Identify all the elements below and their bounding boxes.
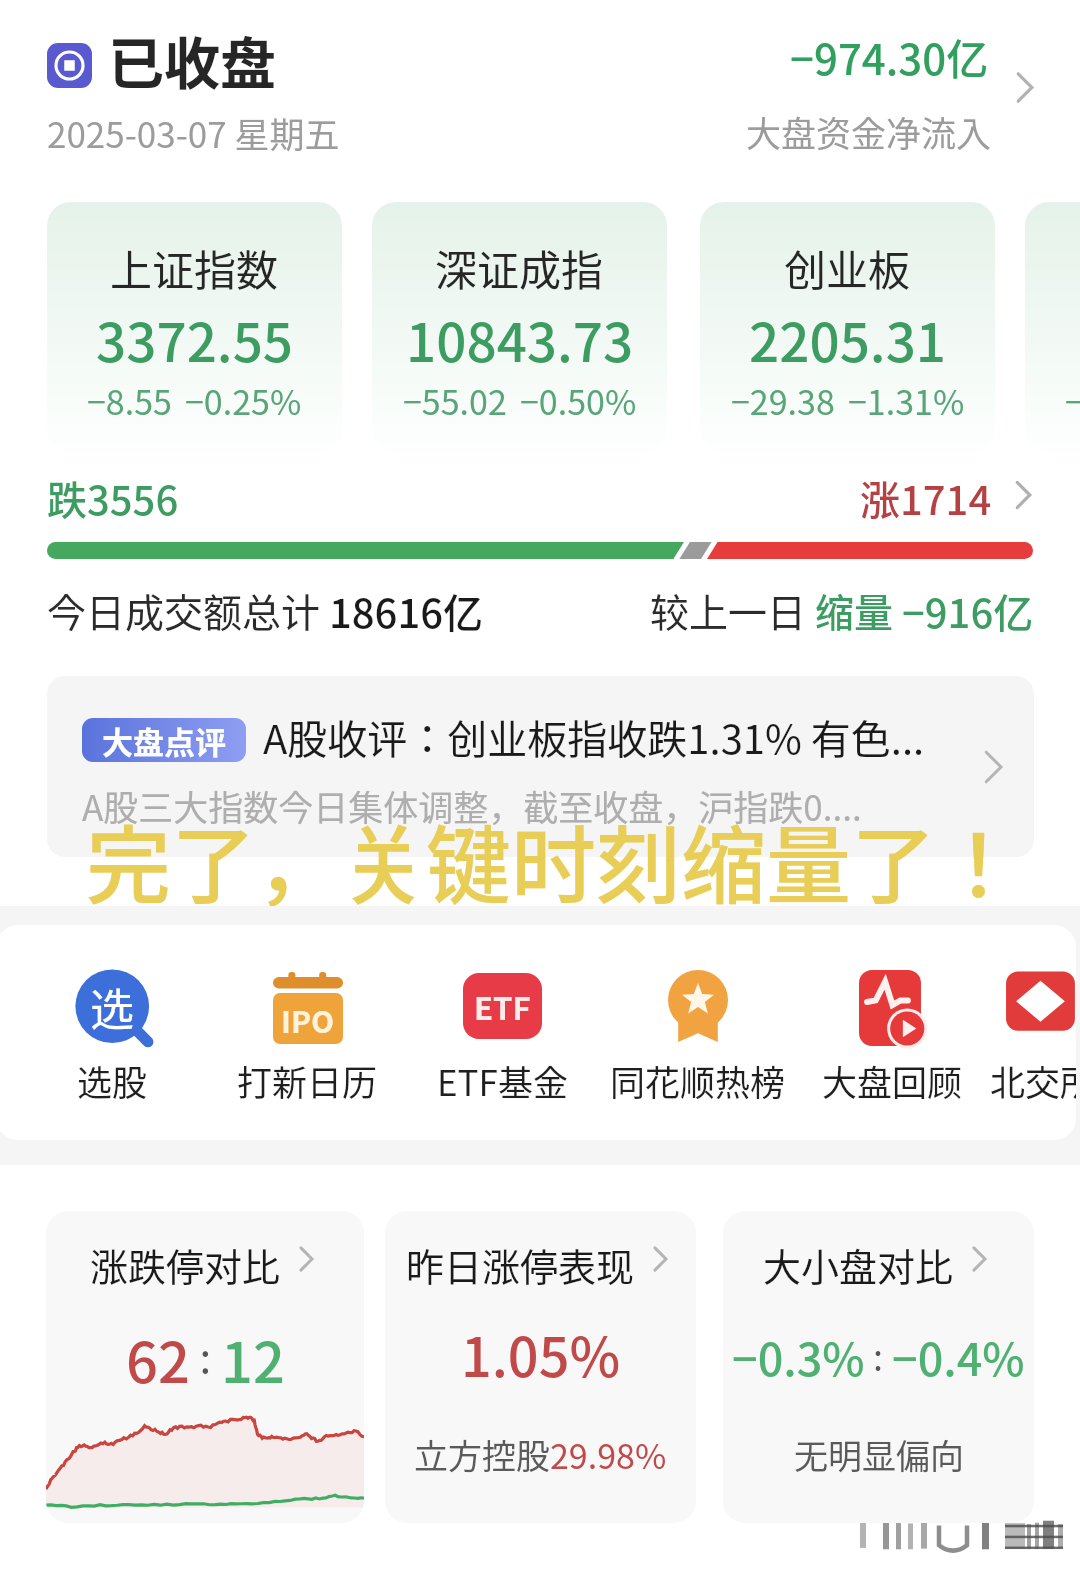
staticText: 大盘资金净流入 — [746, 106, 992, 157]
staticText: 跌3556 — [47, 469, 179, 527]
staticText: 大盘回顾 — [822, 1055, 963, 1106]
staticText: 大小盘对比 — [763, 1237, 954, 1292]
staticText: −8.55 — [87, 376, 172, 425]
button[interactable]: Capital flow detail — [1006, 69, 1043, 106]
staticText: 创业板 — [784, 237, 911, 298]
staticText: 缩量 — [815, 582, 902, 638]
button[interactable]: 大盘点评 — [47, 676, 1034, 857]
staticText: 涨跌停对比 — [90, 1237, 281, 1292]
staticText: 29.98% — [550, 1430, 667, 1479]
staticText: 较上一日 — [650, 582, 815, 638]
staticText: 北交所 — [990, 1055, 1076, 1106]
button[interactable]: 大小盘对比 — [723, 1211, 1034, 1523]
button[interactable]: 深证成指 — [372, 202, 667, 452]
staticText: 12 — [221, 1318, 285, 1399]
staticText: −974.30亿 — [790, 26, 989, 87]
staticText: : — [865, 1329, 892, 1381]
staticText: −0.4% — [892, 1324, 1025, 1389]
staticText: ETF基金 — [437, 1055, 568, 1106]
button[interactable]: ETF — [405, 925, 600, 1140]
staticText: 2025-03-07 星期五 — [47, 107, 340, 158]
button[interactable]: 同花顺热榜 — [600, 925, 795, 1140]
staticText: 打新日历 — [237, 1055, 378, 1106]
staticText: −916亿 — [902, 582, 1034, 640]
button[interactable]: Open market commentary — [973, 747, 1013, 787]
button[interactable]: Market status — [47, 43, 92, 88]
staticText: 今日成交额总计 — [47, 582, 329, 638]
staticText: 2205.31 — [749, 301, 947, 378]
staticText: 涨1714 — [860, 469, 992, 527]
button[interactable]: 创业板 — [700, 202, 995, 452]
staticText: 选 — [90, 975, 134, 1039]
staticText: −1.31% — [848, 376, 965, 425]
staticText: −0.3% — [732, 1324, 865, 1389]
button[interactable]: 选 — [15, 925, 210, 1140]
staticText: A股收评：创业板指收跌1.31% 有色... — [263, 708, 925, 766]
staticText: ETF — [474, 984, 531, 1029]
staticText: 18616亿 — [329, 582, 483, 640]
staticText: 无明显偏向 — [794, 1430, 964, 1479]
staticText: 深证成指 — [435, 237, 604, 298]
staticText: 已收盘 — [108, 19, 276, 100]
staticText: −8.17 — [1065, 376, 1080, 425]
button[interactable]: 北交所 — [990, 925, 1076, 1140]
staticText: −55.02 — [403, 376, 507, 425]
staticText: 大盘点评 — [102, 718, 226, 762]
staticText: 62 — [126, 1318, 190, 1399]
button[interactable]: 大盘回顾 — [795, 925, 990, 1140]
button[interactable]: IPO — [210, 925, 405, 1140]
staticText: 选股 — [77, 1055, 148, 1106]
staticText: 上证指数 — [110, 237, 279, 298]
staticText: −29.38 — [731, 376, 835, 425]
button[interactable]: 涨跌停对比 — [46, 1211, 364, 1523]
staticText: 立方控股 — [414, 1430, 550, 1479]
button[interactable]: 北证50 — [1025, 202, 1080, 452]
staticText: 3372.55 — [96, 301, 294, 378]
staticText: 昨日涨停表现 — [406, 1237, 635, 1292]
staticText: −0.25% — [185, 376, 302, 425]
button[interactable]: 昨日涨停表现 — [385, 1211, 696, 1523]
staticText: 同花顺热榜 — [610, 1055, 786, 1106]
button[interactable]: Advancers decliners detail — [1006, 478, 1040, 512]
staticText: 1.05% — [461, 1314, 621, 1392]
staticText: 完了，关键时刻缩量了！ — [86, 798, 1022, 921]
button[interactable]: 上证指数 — [47, 202, 342, 452]
staticText: 10843.73 — [406, 301, 634, 378]
staticText: A股三大指数今日集体调整，截至收盘，沪指跌0.... — [82, 780, 862, 831]
staticText: IPO — [281, 998, 335, 1041]
staticText: −0.50% — [520, 376, 637, 425]
staticText: : — [190, 1324, 221, 1385]
